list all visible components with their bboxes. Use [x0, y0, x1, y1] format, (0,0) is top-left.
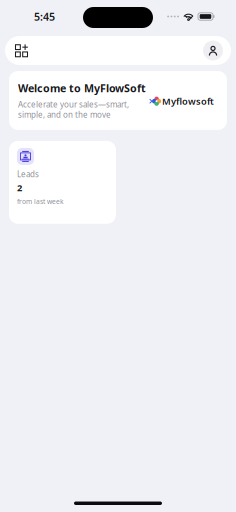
- staticText: Myflowsoft: [162, 95, 214, 107]
- button[interactable]: Leads: [9, 141, 116, 224]
- staticText: 2: [17, 181, 22, 194]
- staticText: from last week: [17, 197, 64, 206]
- button[interactable]: Profile: [199, 36, 227, 65]
- staticText: Leads: [17, 169, 39, 179]
- staticText: 5:45: [34, 9, 55, 24]
- staticText: Welcome to MyFlowSoft: [18, 81, 146, 95]
- staticText: simple, and on the move: [18, 109, 111, 120]
- staticText: Accelerate your sales—smart,: [18, 99, 129, 110]
- button[interactable]: Add: [8, 36, 35, 65]
